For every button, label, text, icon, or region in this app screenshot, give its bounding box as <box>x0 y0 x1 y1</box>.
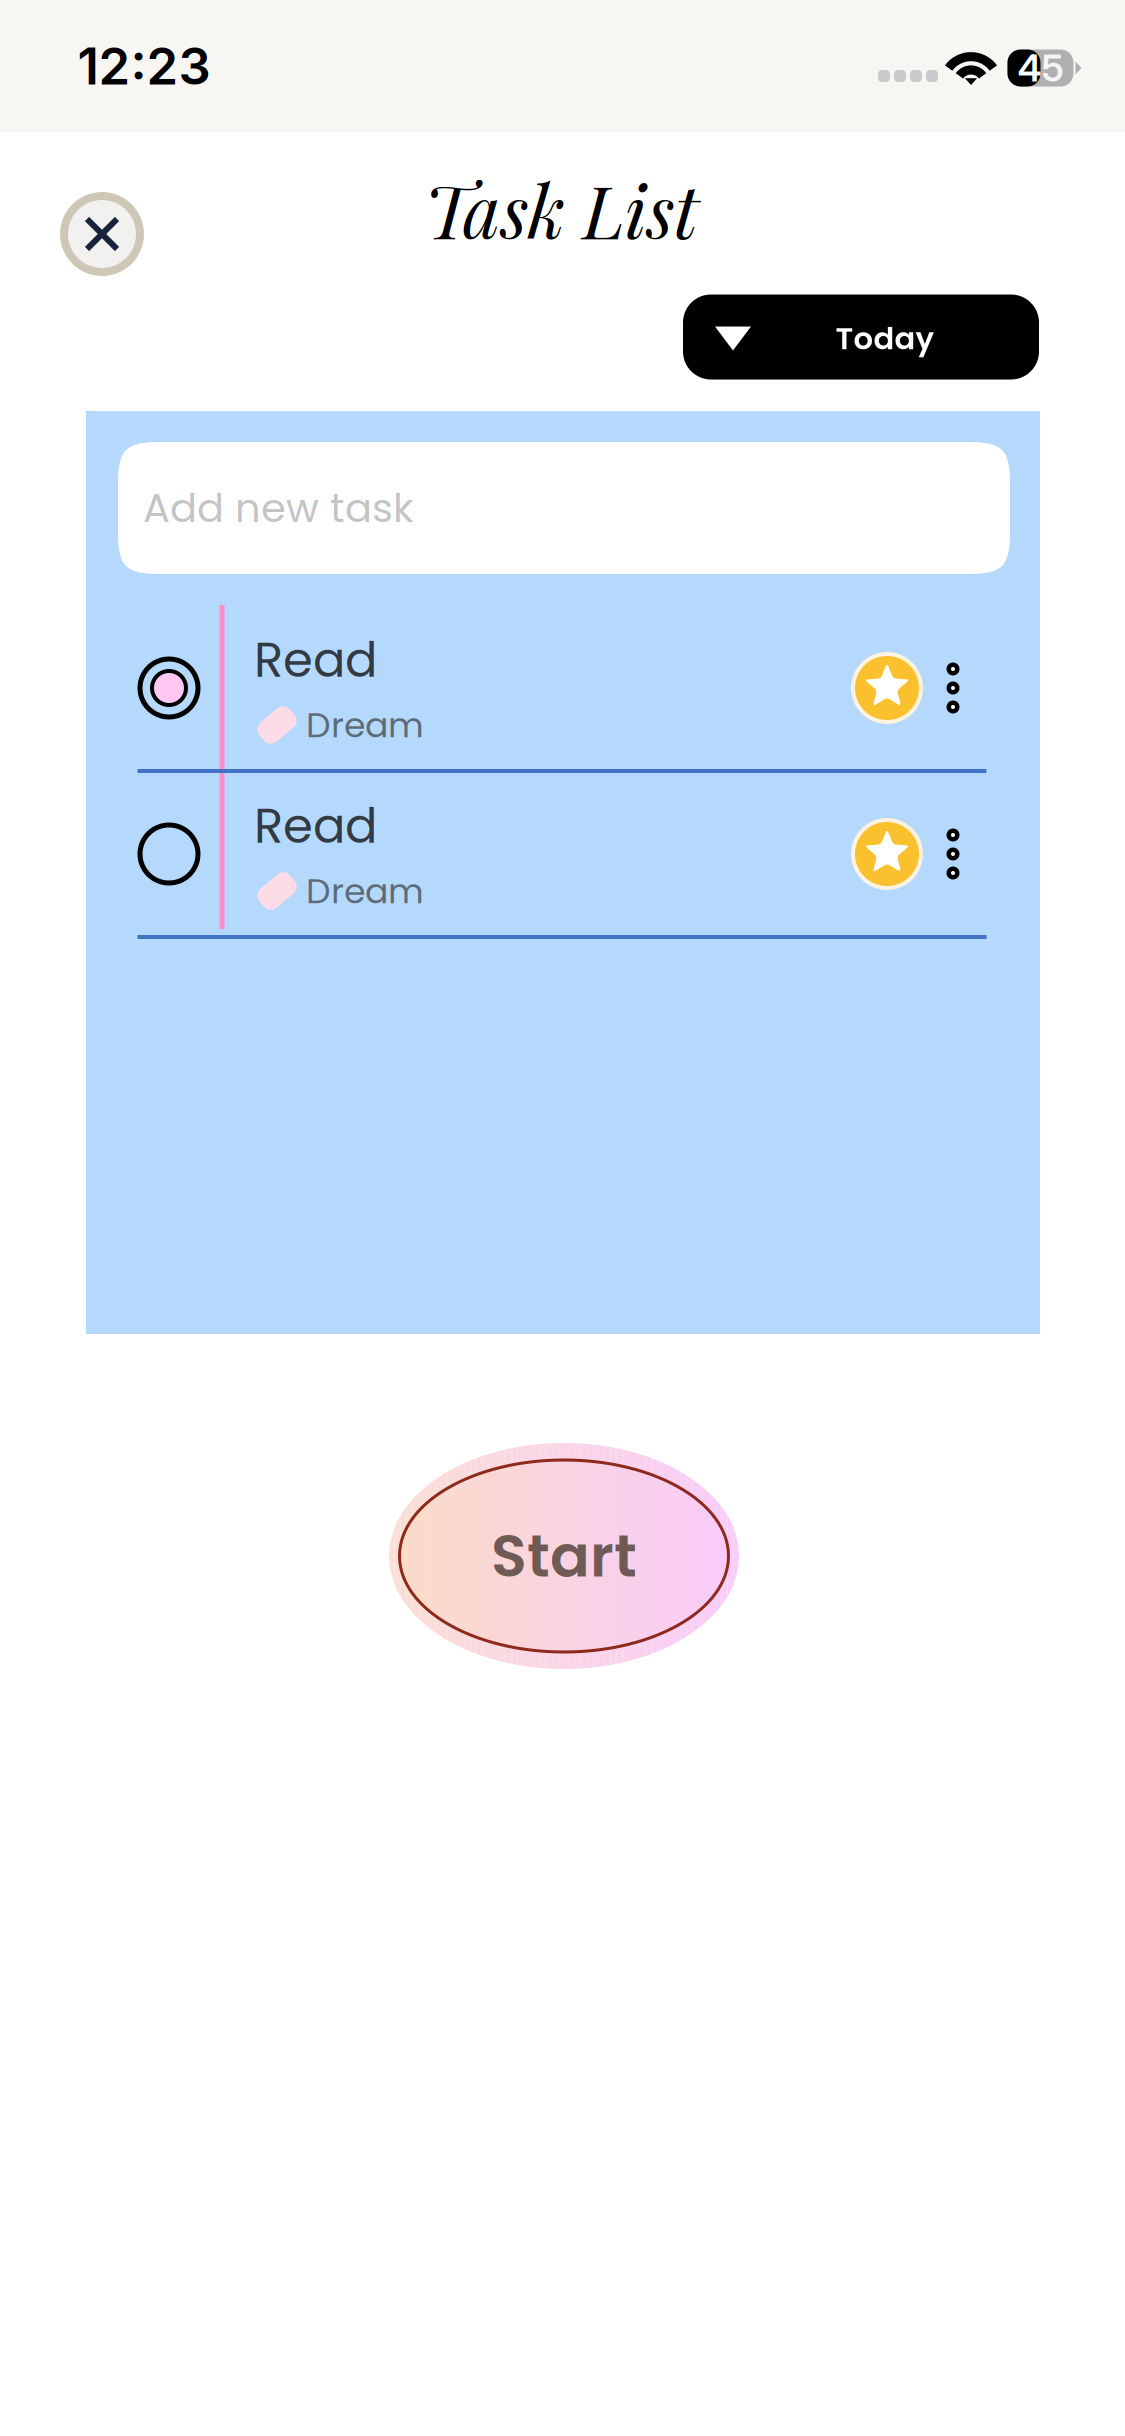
button[interactable]: Start <box>389 1442 739 1670</box>
staticText: Dream <box>306 867 424 915</box>
button[interactable]: Favourite task <box>848 649 926 727</box>
button[interactable]: Add new task <box>118 442 1010 574</box>
button[interactable]: More options <box>930 814 976 894</box>
button[interactable]: Close <box>54 186 150 282</box>
button[interactable]: Mark task complete <box>124 809 214 899</box>
staticText: Add new task <box>143 480 414 536</box>
staticText: Today <box>835 317 934 360</box>
staticText: 4 <box>1017 45 1041 91</box>
staticText: 5 <box>1041 45 1063 91</box>
staticText: Read <box>254 626 377 694</box>
staticText: 12:23 <box>77 35 210 97</box>
button[interactable]: Today <box>683 294 1039 379</box>
button[interactable]: Favourite task <box>848 815 926 893</box>
staticText: Task List <box>424 161 698 257</box>
staticText: Read <box>254 792 377 860</box>
staticText: Start <box>491 1515 637 1597</box>
button[interactable]: More options <box>930 648 976 728</box>
staticText: Dream <box>306 701 424 749</box>
button[interactable]: Mark task incomplete <box>124 643 214 733</box>
